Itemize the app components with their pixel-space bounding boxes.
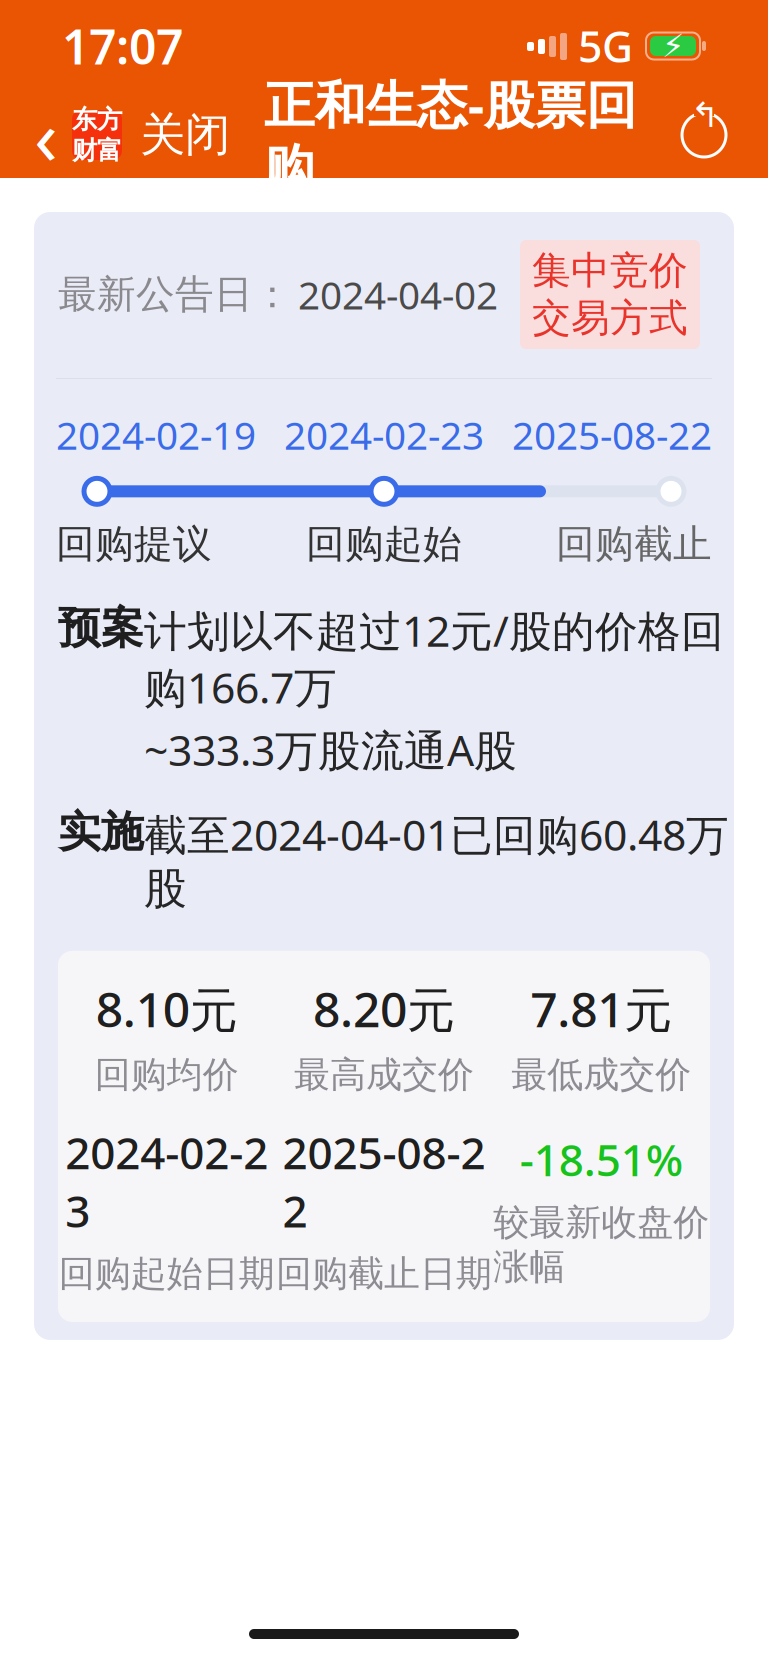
staticText: 回购起始日期 bbox=[59, 1252, 275, 1296]
staticText: 最高成交价 bbox=[294, 1053, 474, 1097]
staticText: 2025-08-22 bbox=[512, 409, 712, 460]
staticText: 回购截止日期 bbox=[276, 1252, 492, 1296]
staticText: 17:07 bbox=[62, 14, 183, 78]
staticText: 8.20元 bbox=[313, 977, 455, 1041]
staticText: 集中竞价交易方式 bbox=[532, 247, 688, 342]
staticText: 最低成交价 bbox=[511, 1053, 691, 1097]
button[interactable]: 东方 bbox=[72, 94, 230, 176]
staticText: 回购均价 bbox=[95, 1053, 239, 1097]
staticText: 东方 bbox=[72, 104, 122, 135]
staticText: 实施 bbox=[58, 806, 144, 858]
staticText: 回购起始 bbox=[306, 520, 462, 568]
staticText: 2024-02-19 bbox=[56, 409, 256, 460]
staticText: 较最新收盘价涨幅 bbox=[493, 1200, 709, 1289]
staticText: 最新公告日： bbox=[58, 271, 292, 318]
staticText: 2024-02-23 bbox=[65, 1123, 268, 1240]
button[interactable]: 刷新 bbox=[674, 105, 734, 165]
staticText: 7.81元 bbox=[530, 977, 672, 1041]
staticText: ↰ bbox=[690, 95, 719, 135]
staticText: ‹ bbox=[34, 84, 58, 186]
staticText: 2025-08-22 bbox=[282, 1123, 485, 1240]
staticText: ~333.3万股流通A股 bbox=[144, 721, 517, 778]
staticText: 回购截止 bbox=[556, 520, 712, 568]
staticText: 正和生态-股票回购 bbox=[264, 70, 637, 200]
staticText: 截至2024-04-01已回购60.48万股 bbox=[144, 806, 729, 915]
staticText: -18.51% bbox=[520, 1130, 683, 1188]
staticText: 计划以不超过12元/股的价格回购166.7万 bbox=[144, 602, 724, 715]
staticText: 预案 bbox=[58, 602, 144, 654]
staticText: 回购提议 bbox=[56, 520, 212, 568]
staticText: 2024-02-23 bbox=[284, 409, 484, 460]
staticText: ⚡︎ bbox=[662, 28, 684, 64]
button[interactable]: 返回 bbox=[20, 97, 72, 173]
staticText: 8.10元 bbox=[96, 977, 238, 1041]
staticText: 5G bbox=[578, 18, 633, 74]
staticText: 2024-04-02 bbox=[298, 269, 498, 320]
staticText: 财富 bbox=[72, 135, 122, 166]
staticText: 关闭 bbox=[140, 107, 230, 163]
